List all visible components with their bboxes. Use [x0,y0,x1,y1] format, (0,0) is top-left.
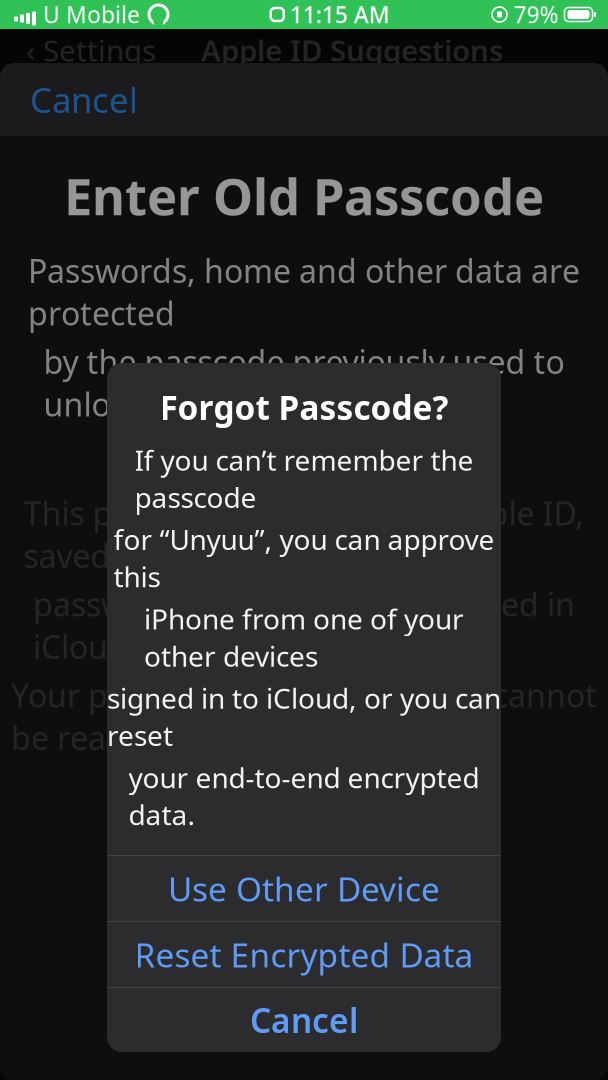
staticText: Cancel [250,998,358,1042]
staticText: Passwords, home and other data are prote… [28,249,580,334]
staticText: ‹ Settings [26,30,156,69]
staticText: iPhone from one of your other devices [144,600,464,674]
staticText: Enter Old Passcode [64,162,544,229]
staticText: by Apple. [235,765,373,807]
staticText: If you can’t remember the passcode [134,441,473,516]
button[interactable]: Use Other Device [107,856,501,921]
button[interactable]: Reset Encrypted Data [107,922,501,987]
staticText: This passcode protects your Apple ID, sa… [23,492,584,577]
button[interactable]: Cancel [107,988,501,1052]
staticText: 79% [513,0,558,29]
staticText: U Mobile [43,0,140,29]
staticText: your end-to-end encrypted data. [128,759,479,833]
staticText: iPhone. [247,431,360,474]
staticText: Your passcode is encrypted and cannot be… [11,674,597,759]
staticText: for “Unyuu”, you can approve this [113,521,494,595]
staticText: Reset Encrypted Data [134,932,473,977]
button[interactable]: Cancel [0,62,158,136]
staticText: signed in to iCloud, or you can reset [107,679,501,754]
staticText: Use Other Device [168,866,440,911]
staticText: 11:15 AM [290,0,390,29]
staticText: passwords, and other data stored in iClo… [33,583,575,668]
staticText: by the passcode previously used to unloc… [43,340,564,425]
staticText: Apple ID Suggestions [201,30,503,69]
staticText: Cancel [30,76,138,122]
staticText: Forgot Passcode? [159,385,448,429]
